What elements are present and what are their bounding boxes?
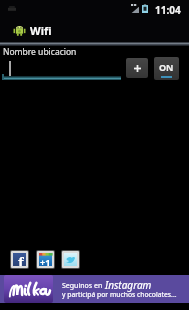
button[interactable]: Nombre ubicacion xyxy=(2,57,121,80)
button[interactable]: Wifi xyxy=(13,17,52,43)
staticText: Seguinos en xyxy=(62,281,105,291)
button[interactable]: Agregar xyxy=(126,58,148,78)
button[interactable]: Twitter xyxy=(61,250,80,269)
staticText: +1 xyxy=(40,256,51,268)
staticText: Nombre ubicacion xyxy=(3,46,77,58)
staticText: ON xyxy=(159,61,174,73)
staticText: Wifi xyxy=(30,23,52,38)
button[interactable]: Publicidad Milka xyxy=(0,275,189,303)
staticText: f xyxy=(18,253,24,266)
staticText: Instagram xyxy=(105,278,152,292)
staticText: 11:04 xyxy=(155,3,181,17)
staticText: y participá por muchos chocolates... xyxy=(62,290,177,299)
button[interactable]: Google Plus One xyxy=(36,250,55,269)
button[interactable]: Facebook xyxy=(10,250,29,269)
button[interactable]: ON xyxy=(154,57,179,80)
